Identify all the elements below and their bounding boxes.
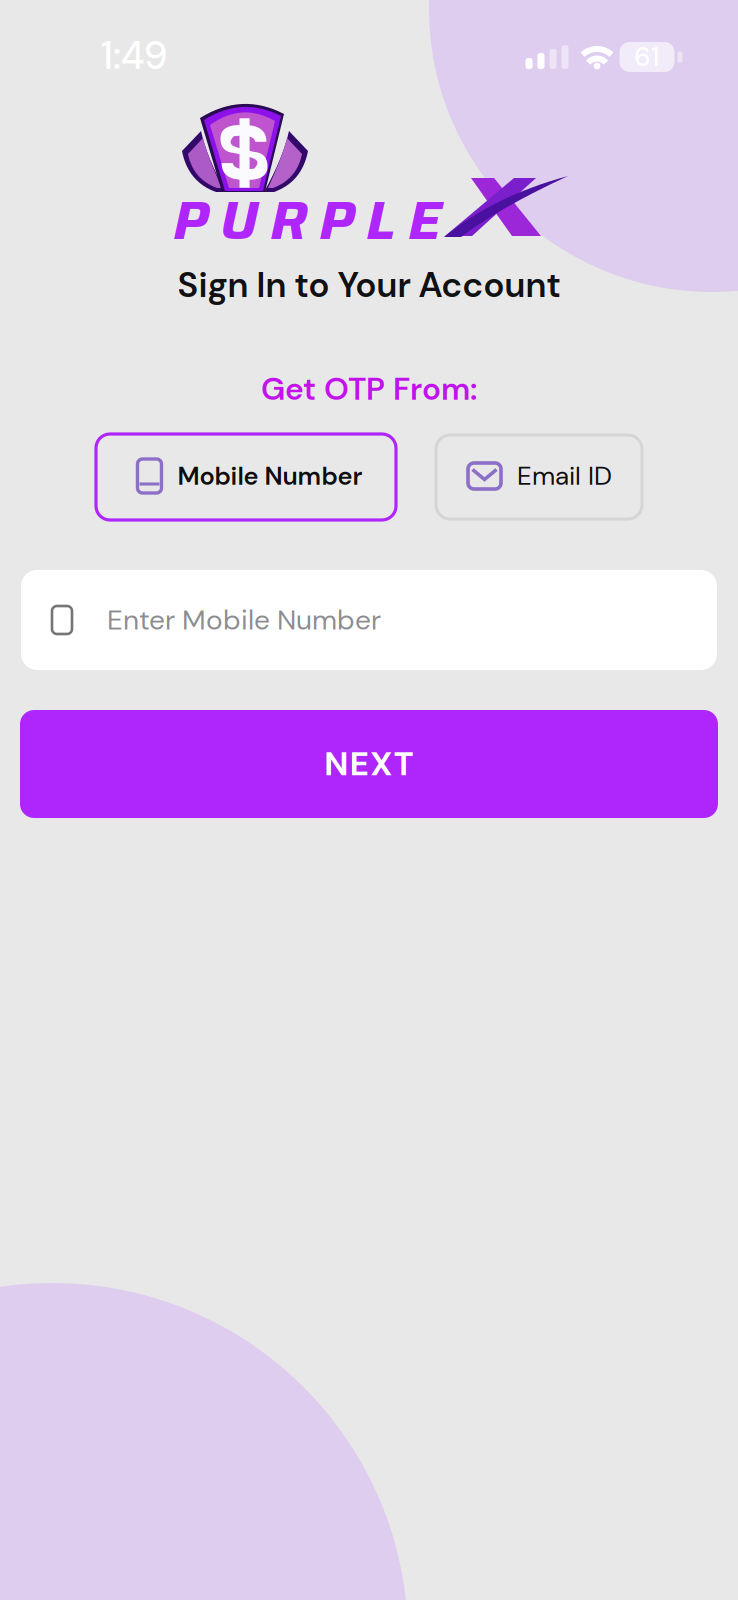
button[interactable]: NEXT <box>20 710 718 818</box>
staticText: Get OTP From: <box>261 368 477 409</box>
staticText: 1:49 <box>101 31 167 81</box>
staticText: Mobile Number <box>177 459 362 492</box>
staticText: Sign In to Your Account <box>177 262 560 308</box>
button[interactable]: Mobile Number <box>96 434 396 520</box>
staticText: 61 <box>634 40 660 74</box>
staticText: Enter Mobile Number <box>107 602 381 638</box>
staticText: NEXT <box>324 742 414 786</box>
staticText: PURPLE <box>173 177 441 263</box>
button[interactable]: Email ID <box>436 435 642 519</box>
staticText: Email ID <box>517 459 612 493</box>
